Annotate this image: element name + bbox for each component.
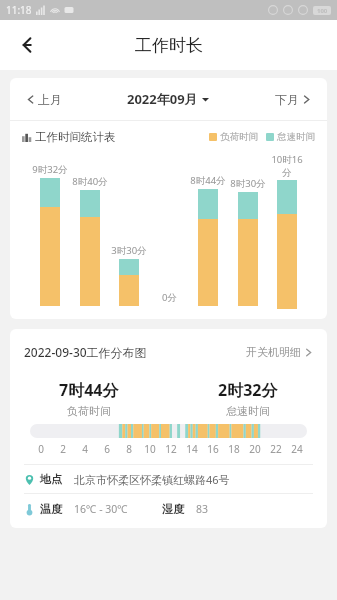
staticText: 18 (228, 442, 240, 456)
staticText: 20 (249, 442, 261, 456)
staticText: 北京市怀柔区怀柔镇红螺路46号 (74, 472, 230, 487)
staticText: 3时30分 (111, 244, 147, 257)
staticText: 24 (291, 442, 303, 456)
staticText: 8时30分 (230, 177, 266, 190)
staticText: 工作时长 (135, 35, 203, 56)
button[interactable]: 下月 (273, 88, 313, 111)
staticText: 负荷时间 (220, 131, 258, 143)
staticText: 8时44分 (190, 174, 226, 187)
staticText: 温度 (40, 502, 62, 516)
staticText: 下月 (275, 92, 299, 107)
staticText: 6 (104, 442, 110, 456)
staticText: 9时32分 (32, 163, 68, 176)
button[interactable]: 上月 (24, 88, 64, 111)
button[interactable]: 开关机明细 (244, 341, 315, 363)
staticText: 地点 (40, 472, 62, 486)
staticText: 怠速时间 (277, 131, 315, 143)
staticText: 22 (270, 442, 282, 456)
staticText: 100 (317, 7, 328, 15)
staticText: 11:18 (6, 3, 32, 17)
staticText: 2 (60, 442, 66, 456)
button[interactable]: 2022年09月 (125, 86, 211, 112)
staticText: 8时40分 (72, 175, 108, 188)
staticText: 16℃ - 30℃ (74, 502, 128, 516)
staticText: 开关机明细 (246, 345, 301, 359)
button[interactable]: Back (8, 25, 48, 65)
staticText: 0分 (162, 291, 177, 304)
staticText: 工作时间统计表 (35, 130, 116, 144)
staticText: 10 (144, 442, 156, 456)
staticText: 上月 (38, 92, 62, 107)
staticText: 14 (186, 442, 198, 456)
staticText: 负荷时间 (67, 404, 111, 418)
staticText: 2022年09月 (127, 90, 198, 108)
staticText: 16 (207, 442, 219, 456)
staticText: 12 (165, 442, 177, 456)
staticText: 2022-09-30工作分布图 (24, 344, 147, 360)
staticText: 2时32分 (218, 379, 278, 401)
staticText: 怠速时间 (226, 404, 270, 418)
staticText: 0 (38, 442, 44, 456)
staticText: 7时44分 (59, 379, 119, 401)
staticText: 10时16分 (269, 153, 305, 178)
staticText: 83 (196, 502, 209, 516)
staticText: 湿度 (162, 502, 184, 516)
staticText: 8 (126, 442, 132, 456)
staticText: 4 (82, 442, 88, 456)
